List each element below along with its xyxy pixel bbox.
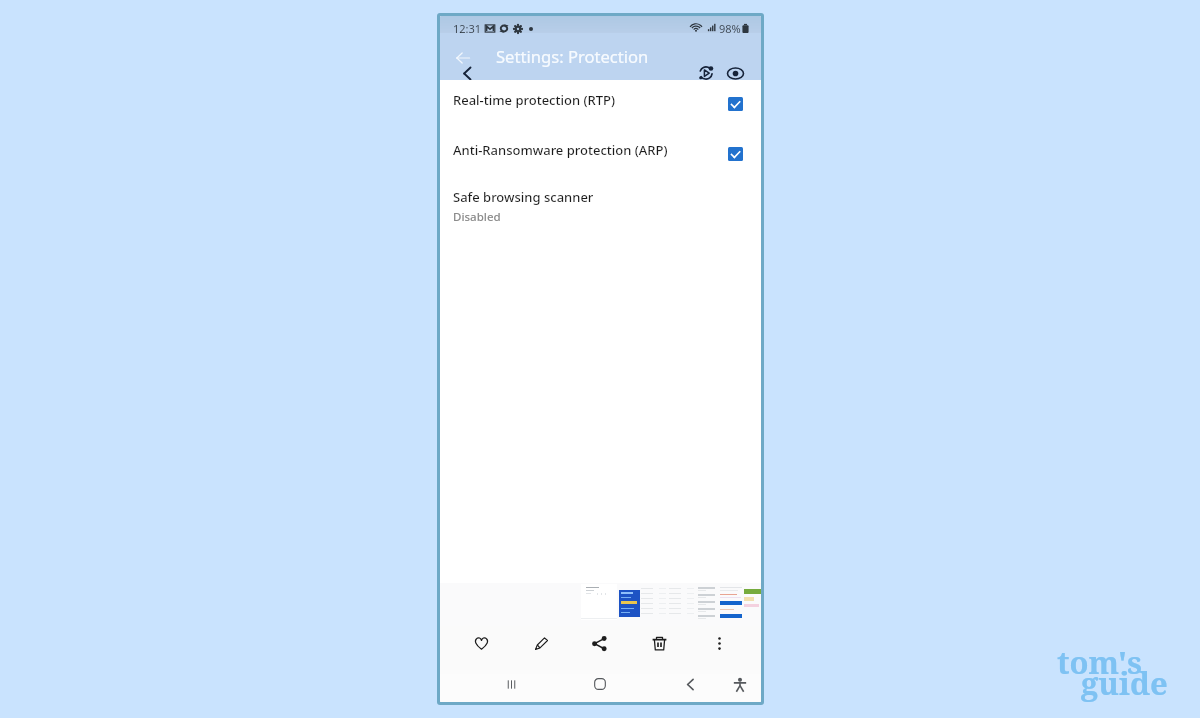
staticText: Anti-Ransomware protection (ARP) <box>453 141 668 159</box>
button[interactable]: Preview <box>722 60 748 86</box>
staticText: guide <box>1081 662 1168 704</box>
button[interactable]: More options <box>703 627 735 659</box>
button[interactable]: Share <box>583 627 615 659</box>
staticText: Real-time protection (RTP) <box>453 91 616 109</box>
button[interactable]: Safe browsing scanner <box>440 188 761 236</box>
button[interactable]: Accessibility <box>725 670 755 700</box>
button[interactable]: Previous <box>454 60 480 86</box>
button[interactable]: Real-time protection (RTP) <box>440 91 761 139</box>
button[interactable]: Back <box>675 669 705 699</box>
button[interactable]: Edit <box>525 627 557 659</box>
staticText: Disabled <box>453 209 501 225</box>
button[interactable]: Recents <box>496 669 526 699</box>
staticText: tom's <box>1057 641 1142 683</box>
button[interactable]: Delete <box>643 627 675 659</box>
staticText: Settings: Protection <box>496 45 649 67</box>
button[interactable]: Favorite <box>465 627 497 659</box>
staticText: 12:31 <box>453 21 482 36</box>
button[interactable]: Navigate up <box>450 45 476 71</box>
button[interactable]: Home <box>585 669 615 699</box>
button[interactable]: Anti-Ransomware protection (ARP) <box>440 141 761 189</box>
staticText: 98% <box>719 21 741 36</box>
button[interactable]: Scroll capture <box>693 60 719 86</box>
staticText: Safe browsing scanner <box>453 188 594 206</box>
